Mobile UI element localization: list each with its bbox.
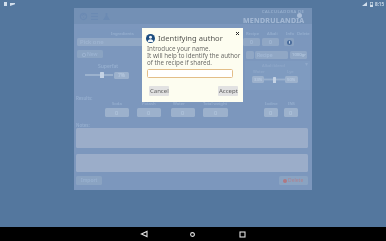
button[interactable]: Cancel xyxy=(149,86,169,96)
button[interactable]: 7% xyxy=(114,72,129,79)
staticText: Iodine xyxy=(265,101,278,107)
staticText: 0 xyxy=(214,109,218,116)
staticText: Introduce your name. It will help to ide… xyxy=(147,44,241,67)
button[interactable]: 33% xyxy=(252,76,264,83)
staticText: Import xyxy=(81,177,98,184)
button[interactable]: 0 xyxy=(171,108,195,117)
staticText: 0 xyxy=(289,109,293,116)
button[interactable]: Recipe xyxy=(255,51,288,59)
button[interactable]: Pick one xyxy=(77,38,240,46)
staticText: 50% xyxy=(287,77,296,83)
staticText: Lye xyxy=(287,69,294,75)
staticText: 0 xyxy=(147,109,151,116)
staticText: Potash xyxy=(142,101,156,107)
staticText: MENDRULANDIA xyxy=(243,16,305,25)
staticText: Pick one xyxy=(80,38,104,46)
button[interactable]: Recents xyxy=(236,227,248,241)
staticText: Notes: xyxy=(76,122,90,128)
staticText: 8:15 xyxy=(375,1,385,7)
staticText: Recipe xyxy=(246,31,259,37)
staticText: Soda xyxy=(112,101,122,107)
button[interactable]: 50% xyxy=(285,76,298,83)
staticText: Cancel xyxy=(150,87,169,95)
button[interactable]: Import xyxy=(76,176,102,185)
button[interactable]: 0 xyxy=(264,108,278,117)
button[interactable]: 0 xyxy=(137,108,161,117)
staticText: 0 xyxy=(250,39,253,46)
staticText: Alkali xyxy=(267,31,278,37)
button[interactable]: 1000gr xyxy=(290,51,307,59)
staticText: 33% xyxy=(254,77,263,83)
button[interactable]: Close xyxy=(233,29,241,37)
button[interactable]: 0 xyxy=(203,108,228,117)
button[interactable]: 0 xyxy=(105,108,129,117)
button[interactable]: New xyxy=(77,50,103,58)
staticText: Ingredients xyxy=(111,31,134,37)
staticText: Identifying author xyxy=(158,33,223,43)
button[interactable]: Info xyxy=(284,38,294,46)
button[interactable]: Back xyxy=(138,227,150,241)
staticText: 0 xyxy=(181,109,185,116)
staticText: 0 xyxy=(269,39,272,46)
staticText: Accept xyxy=(219,87,238,95)
button[interactable]: Home xyxy=(186,227,198,241)
staticText: Delete xyxy=(297,31,310,37)
button[interactable]: Delete xyxy=(279,176,308,185)
staticText: CALCULADORA DE xyxy=(262,9,305,15)
staticText: 1000gr xyxy=(292,52,306,58)
button[interactable] xyxy=(147,69,233,78)
staticText: INS xyxy=(288,101,295,107)
staticText: 7% xyxy=(118,72,126,79)
staticText: Water xyxy=(253,69,265,75)
button[interactable]: Accept xyxy=(218,86,238,96)
staticText: Info xyxy=(286,31,294,37)
button[interactable]: 0 xyxy=(262,38,279,46)
staticText: New xyxy=(87,51,98,58)
staticText: 0 xyxy=(115,109,119,116)
staticText: Alkali blend xyxy=(262,63,285,69)
button[interactable]: 0 xyxy=(243,38,260,46)
staticText: Results: xyxy=(76,95,93,101)
staticText: Delete xyxy=(288,177,304,184)
button[interactable]: 0 xyxy=(284,108,298,117)
staticText: Recipe xyxy=(257,52,273,59)
staticText: Total weight xyxy=(203,101,228,107)
staticText: Water xyxy=(173,101,185,107)
staticText: Superfat xyxy=(98,63,119,70)
staticText: 0 xyxy=(269,109,273,116)
